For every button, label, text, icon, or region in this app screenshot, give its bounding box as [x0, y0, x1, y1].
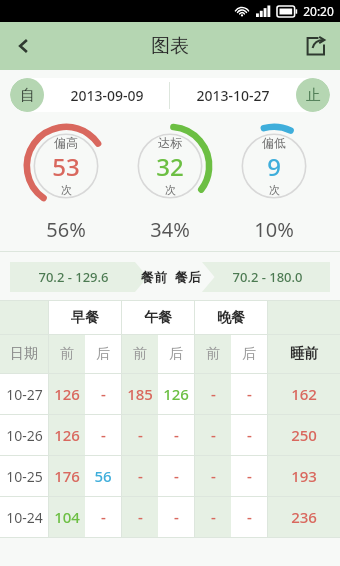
staticText: 126	[163, 384, 189, 404]
staticText: 20:20	[303, 3, 334, 19]
staticText: 睡前	[290, 345, 318, 363]
staticText: -	[174, 466, 179, 486]
staticText: 10%	[254, 216, 294, 243]
staticText: 2013-09-09	[70, 86, 144, 105]
staticText: 56%	[46, 216, 86, 243]
button[interactable]: 2013-10-27	[170, 78, 296, 112]
staticText: 2013-10-27	[196, 86, 270, 105]
button[interactable]: 10-24	[0, 497, 340, 537]
staticText: -	[174, 425, 179, 445]
staticText: -	[101, 384, 106, 404]
staticText: 后	[96, 345, 110, 363]
staticText: 34%	[150, 216, 190, 243]
staticText: 后	[242, 345, 256, 363]
staticText: 10-25	[6, 467, 43, 486]
staticText: 后	[169, 345, 183, 363]
staticText: 70.2 - 129.6	[38, 268, 109, 286]
staticText: -	[211, 466, 216, 486]
staticText: 185	[127, 384, 153, 404]
staticText: -	[211, 384, 216, 404]
staticText: -	[138, 425, 143, 445]
staticText: -	[138, 507, 143, 527]
staticText: 32	[156, 150, 184, 183]
staticText: 9	[267, 150, 281, 183]
staticText: 162	[291, 384, 317, 404]
staticText: 53	[52, 150, 80, 183]
staticText: 达标	[158, 135, 182, 150]
staticText: 日期	[10, 345, 38, 363]
staticText: 自	[20, 86, 35, 105]
staticText: 10-26	[6, 426, 43, 445]
staticText: 止	[306, 86, 321, 105]
staticText: 70.2 - 180.0	[232, 268, 303, 286]
button[interactable]: Back	[0, 22, 48, 70]
staticText: 次	[61, 183, 72, 197]
staticText: 次	[269, 183, 280, 197]
staticText: -	[101, 507, 106, 527]
staticText: -	[211, 425, 216, 445]
staticText: -	[247, 466, 252, 486]
staticText: 餐后	[175, 269, 201, 285]
button[interactable]: 10-26	[0, 415, 340, 455]
staticText: 前	[60, 345, 74, 363]
staticText: 前	[133, 345, 147, 363]
staticText: 126	[54, 384, 80, 404]
staticText: -	[247, 384, 252, 404]
staticText: -	[138, 466, 143, 486]
staticText: -	[247, 507, 252, 527]
button[interactable]: 2013-09-09	[44, 78, 169, 112]
staticText: 56	[94, 466, 112, 486]
staticText: 图表	[151, 34, 189, 58]
button[interactable]: Share	[292, 22, 340, 70]
staticText: -	[211, 507, 216, 527]
staticText: 193	[291, 466, 317, 486]
button[interactable]: 自	[10, 78, 44, 112]
staticText: 餐前	[141, 269, 167, 285]
staticText: 午餐	[144, 309, 172, 327]
staticText: 次	[165, 183, 176, 197]
button[interactable]: 止	[296, 78, 330, 112]
staticText: 偏高	[54, 135, 78, 150]
staticText: 前	[206, 345, 220, 363]
staticText: 126	[54, 425, 80, 445]
staticText: 晚餐	[217, 309, 245, 327]
staticText: 10-24	[6, 508, 43, 527]
staticText: 10-27	[6, 385, 43, 404]
staticText: 104	[54, 507, 80, 527]
staticText: 250	[291, 425, 317, 445]
button[interactable]: 10-27	[0, 374, 340, 414]
staticText: 176	[54, 466, 80, 486]
staticText: -	[101, 425, 106, 445]
staticText: -	[247, 425, 252, 445]
staticText: 236	[291, 507, 317, 527]
staticText: 早餐	[71, 309, 99, 327]
staticText: -	[174, 507, 179, 527]
button[interactable]: 10-25	[0, 456, 340, 496]
staticText: 偏低	[262, 135, 286, 150]
